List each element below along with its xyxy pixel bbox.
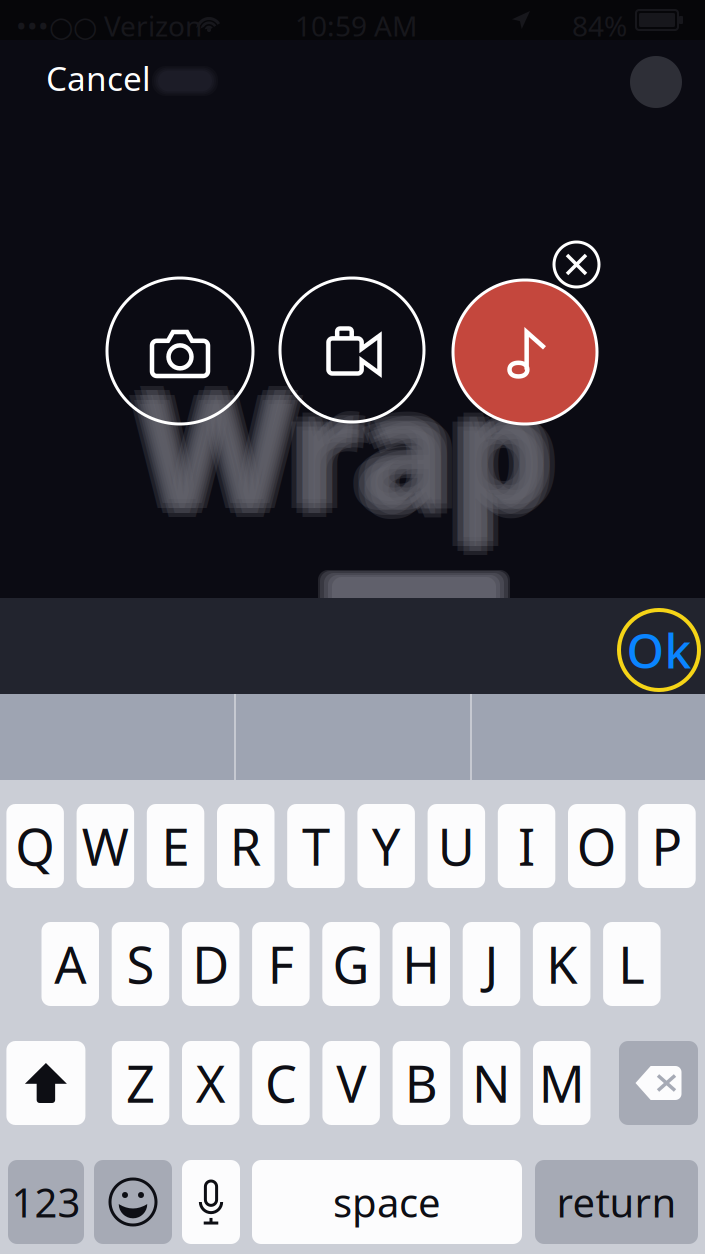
staticText: Z	[126, 1049, 155, 1117]
button[interactable]: Video	[280, 278, 424, 422]
staticText: H	[402, 930, 440, 998]
staticText: space	[333, 1175, 441, 1228]
button[interactable]: U	[428, 804, 485, 888]
staticText: Wrap	[146, 347, 557, 556]
button[interactable]: B	[393, 1041, 450, 1125]
staticText: I	[518, 812, 535, 880]
staticText: F	[268, 930, 294, 998]
staticText: 10:59 AM	[295, 7, 417, 44]
staticText: O	[577, 812, 617, 880]
button[interactable]: J	[463, 922, 520, 1006]
button[interactable]: X	[182, 1041, 239, 1125]
button[interactable]: W	[77, 804, 134, 888]
staticText: Wrap	[151, 342, 562, 551]
button[interactable]: F	[252, 922, 310, 1006]
staticText: return	[556, 1175, 676, 1228]
button[interactable]: Shift	[6, 1041, 85, 1125]
button[interactable]: Z	[112, 1041, 169, 1125]
button[interactable]: O	[568, 804, 625, 888]
button[interactable]: 123	[8, 1160, 84, 1244]
button[interactable]: D	[182, 922, 239, 1006]
staticText: G	[333, 930, 370, 998]
button[interactable]: Ok	[619, 610, 699, 690]
button[interactable]: Dictation	[182, 1160, 240, 1244]
button[interactable]: Emoji	[94, 1160, 172, 1244]
button[interactable]: S	[112, 922, 169, 1006]
staticText: Wrap	[146, 337, 557, 546]
staticText: N	[472, 1049, 511, 1117]
staticText: D	[192, 930, 229, 998]
staticText: Cancel	[46, 56, 151, 100]
staticText: Wrap	[140, 342, 551, 551]
staticText: Wrap	[140, 333, 551, 542]
staticText: W	[82, 812, 129, 880]
staticText: Wrap	[134, 337, 545, 546]
button[interactable]: Y	[357, 804, 415, 888]
button[interactable]: Profile	[630, 56, 682, 108]
staticText: X	[196, 1049, 226, 1117]
button[interactable]: I	[498, 804, 555, 888]
staticText: M	[539, 1049, 585, 1117]
button[interactable]: Photo	[107, 278, 253, 424]
button[interactable]: N	[463, 1041, 520, 1125]
button[interactable]: space	[252, 1160, 522, 1244]
staticText: 123	[11, 1175, 80, 1228]
staticText: Ok	[626, 618, 691, 682]
button[interactable]: Delete	[619, 1041, 698, 1125]
button[interactable]: P	[638, 804, 696, 888]
staticText: Wrap	[129, 342, 540, 551]
button[interactable]: Music	[453, 280, 597, 424]
staticText: Q	[15, 812, 55, 880]
staticText: V	[336, 1049, 366, 1117]
staticText: •••○○ Verizon	[16, 7, 202, 44]
staticText: Y	[372, 812, 401, 880]
button[interactable]: Remove	[554, 242, 599, 287]
staticText: K	[546, 930, 577, 998]
button[interactable]: Q	[6, 804, 64, 888]
button[interactable]: C	[252, 1041, 310, 1125]
staticText: Wrap	[134, 347, 545, 556]
staticText: P	[651, 812, 682, 880]
staticText: U	[438, 812, 475, 880]
staticText: B	[405, 1049, 438, 1117]
staticText: R	[230, 812, 262, 880]
button[interactable]: H	[392, 922, 450, 1006]
staticText: S	[126, 930, 154, 998]
staticText: E	[162, 812, 190, 880]
button[interactable]: T	[287, 804, 345, 888]
button[interactable]: V	[322, 1041, 380, 1125]
button[interactable]: G	[322, 922, 380, 1006]
staticText: T	[302, 812, 330, 880]
button[interactable]: return	[535, 1160, 698, 1244]
button[interactable]: R	[217, 804, 274, 888]
staticText: Wrap	[140, 351, 551, 560]
button[interactable]: E	[147, 804, 204, 888]
button[interactable]: L	[603, 922, 661, 1006]
button[interactable]: Cancel	[46, 51, 176, 105]
staticText: 84%	[572, 7, 627, 44]
button[interactable]: K	[533, 922, 590, 1006]
button[interactable]: M	[533, 1041, 590, 1125]
staticText: C	[265, 1049, 297, 1117]
staticText: A	[54, 930, 86, 998]
staticText: L	[618, 930, 645, 998]
button[interactable]: A	[41, 922, 99, 1006]
staticText: J	[484, 930, 498, 998]
